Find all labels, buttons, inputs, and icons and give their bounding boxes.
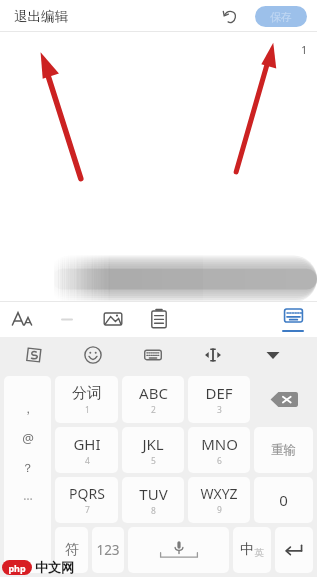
- button[interactable]: 退出编辑: [14, 8, 68, 25]
- button[interactable]: Space / Voice input: [128, 527, 229, 573]
- staticText: 7: [85, 504, 90, 516]
- staticText: MNO: [201, 434, 238, 454]
- button[interactable]: Keyboard: [269, 301, 317, 337]
- staticText: ？: [22, 460, 34, 475]
- staticText: WXYZ: [200, 484, 238, 503]
- staticText: 中: [240, 541, 254, 559]
- button[interactable]: ABC: [122, 376, 184, 423]
- button[interactable]: DEF: [188, 376, 250, 423]
- button[interactable]: WXYZ: [188, 477, 250, 523]
- staticText: php: [8, 562, 26, 574]
- staticText: 9: [217, 504, 222, 516]
- staticText: PQRS: [69, 484, 105, 503]
- staticText: 符: [65, 541, 79, 559]
- staticText: 8: [151, 505, 156, 517]
- button[interactable]: PQRS: [55, 477, 118, 523]
- staticText: @: [22, 429, 34, 447]
- button[interactable]: Backspace: [254, 376, 313, 423]
- staticText: DEF: [205, 383, 233, 403]
- button[interactable]: Text style: [0, 301, 44, 337]
- button[interactable]: 123: [92, 527, 124, 573]
- staticText: 英: [254, 547, 264, 559]
- button[interactable]: Undo: [217, 3, 243, 29]
- button[interactable]: 重输: [254, 427, 313, 473]
- button[interactable]: 分词: [55, 376, 118, 423]
- button[interactable]: Switch keyboard: [123, 337, 183, 372]
- staticText: ，: [22, 401, 34, 416]
- button[interactable]: Sogou input: [4, 337, 63, 372]
- staticText: 5: [151, 455, 156, 467]
- staticText: 4: [85, 455, 90, 467]
- staticText: 1: [85, 404, 90, 416]
- button[interactable]: TUV: [122, 477, 184, 523]
- staticText: …: [23, 487, 33, 503]
- staticText: 保存: [270, 10, 292, 24]
- staticText: 中文网: [35, 559, 74, 575]
- button[interactable]: Enter: [275, 527, 313, 573]
- button[interactable]: 0: [254, 477, 313, 523]
- button[interactable]: Undo style: [44, 301, 90, 337]
- staticText: 0: [279, 490, 288, 510]
- button[interactable]: JKL: [122, 427, 184, 473]
- staticText: 3: [217, 404, 222, 416]
- staticText: 重输: [271, 442, 296, 458]
- button[interactable]: Checklist: [136, 301, 182, 337]
- button[interactable]: 符: [55, 527, 88, 573]
- staticText: 1: [301, 43, 307, 57]
- staticText: 6: [217, 455, 222, 467]
- button[interactable]: GHI: [55, 427, 118, 473]
- button[interactable]: Punctuation: [4, 376, 51, 573]
- button[interactable]: Insert image: [90, 301, 136, 337]
- button[interactable]: More options: [243, 337, 303, 372]
- staticText: 2: [151, 404, 156, 416]
- button[interactable]: 保存: [255, 6, 307, 27]
- staticText: JKL: [142, 434, 164, 454]
- button[interactable]: Move cursor: [183, 337, 243, 372]
- staticText: ABC: [139, 383, 168, 403]
- button[interactable]: Emoji: [63, 337, 123, 372]
- staticText: TUV: [139, 484, 168, 504]
- button[interactable]: MNO: [188, 427, 250, 473]
- button[interactable]: 1: [291, 40, 317, 60]
- button[interactable]: 中: [233, 527, 271, 573]
- staticText: GHI: [73, 434, 101, 454]
- staticText: 123: [96, 541, 120, 559]
- staticText: 分词: [72, 384, 102, 403]
- staticText: 退出编辑: [14, 8, 68, 25]
